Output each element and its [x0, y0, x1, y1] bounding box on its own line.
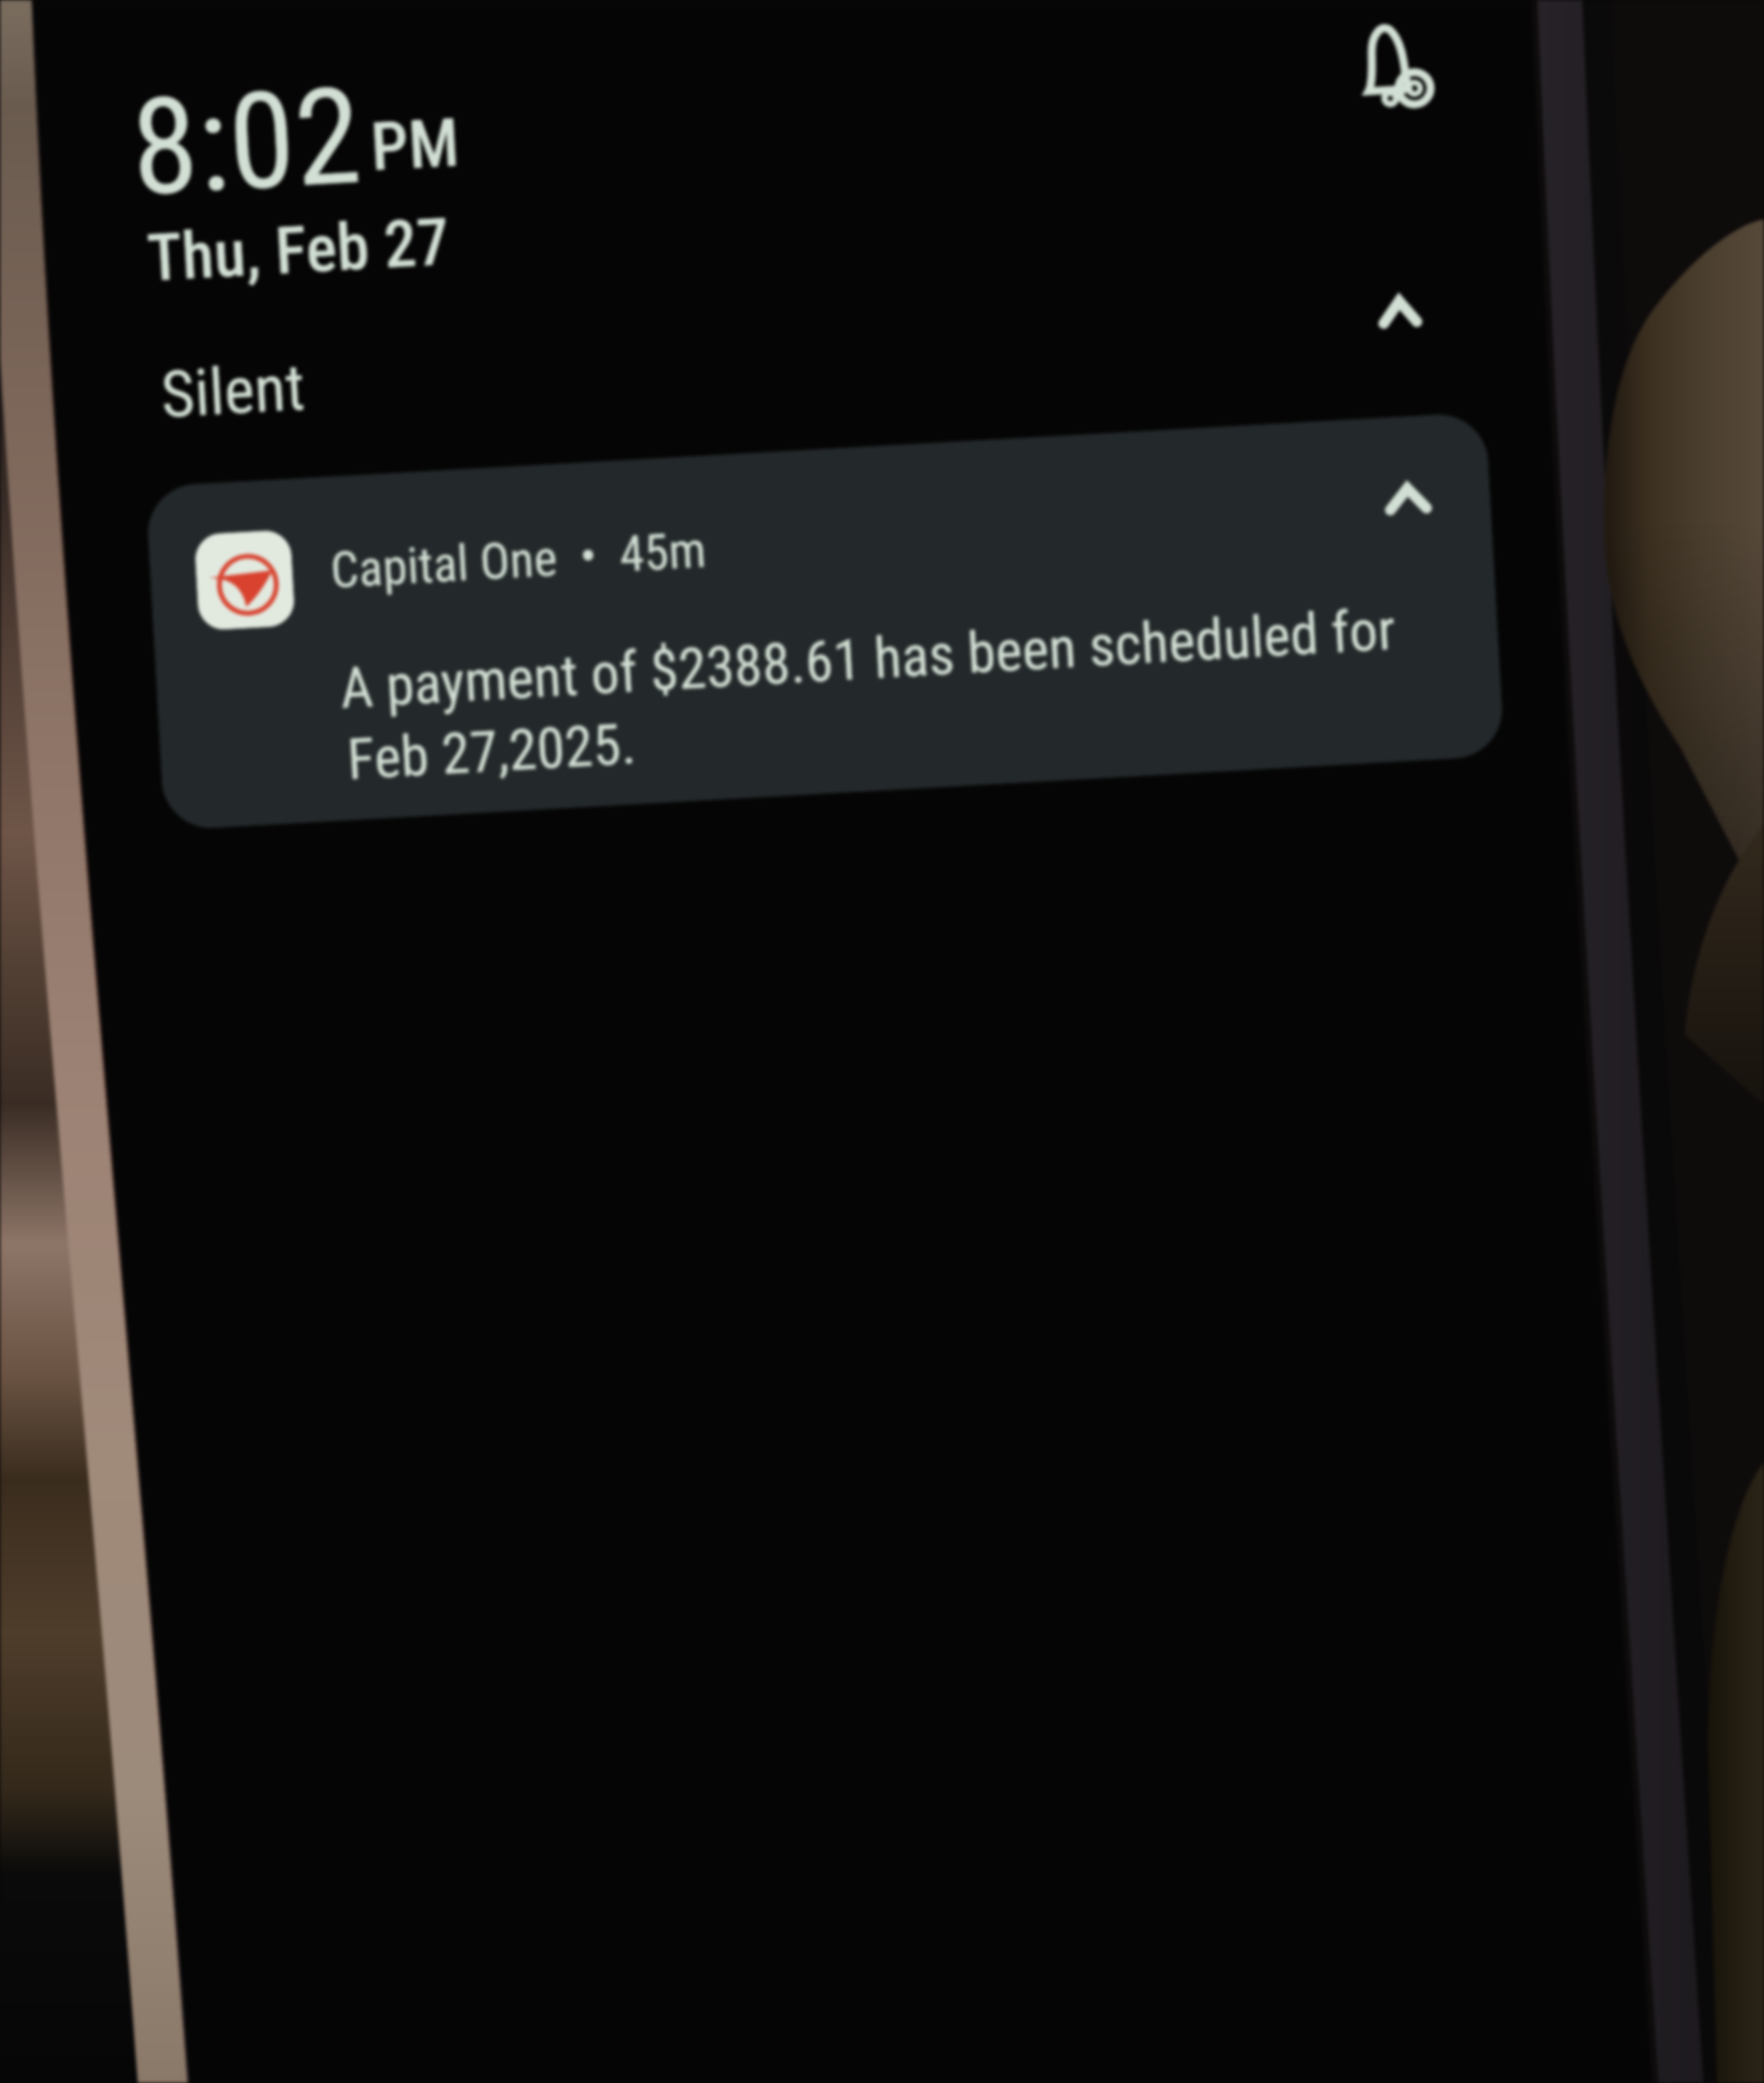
staticText: PM — [369, 103, 462, 187]
staticText: A payment of $2388.61 has been scheduled… — [338, 596, 1398, 722]
staticText: Thu, Feb 27 — [145, 203, 451, 296]
button[interactable]: Expand notifications — [1376, 294, 1423, 330]
button[interactable]: Notification settings — [1355, 18, 1436, 109]
button[interactable]: Capital One • 45m — [145, 412, 1505, 831]
staticText: 8:02 — [127, 57, 365, 227]
staticText: Silent — [159, 349, 307, 433]
staticText: Capital One • 45m — [329, 521, 708, 600]
button[interactable]: Expand notification — [1383, 481, 1433, 516]
staticText: Feb 27,2025. — [346, 710, 638, 793]
